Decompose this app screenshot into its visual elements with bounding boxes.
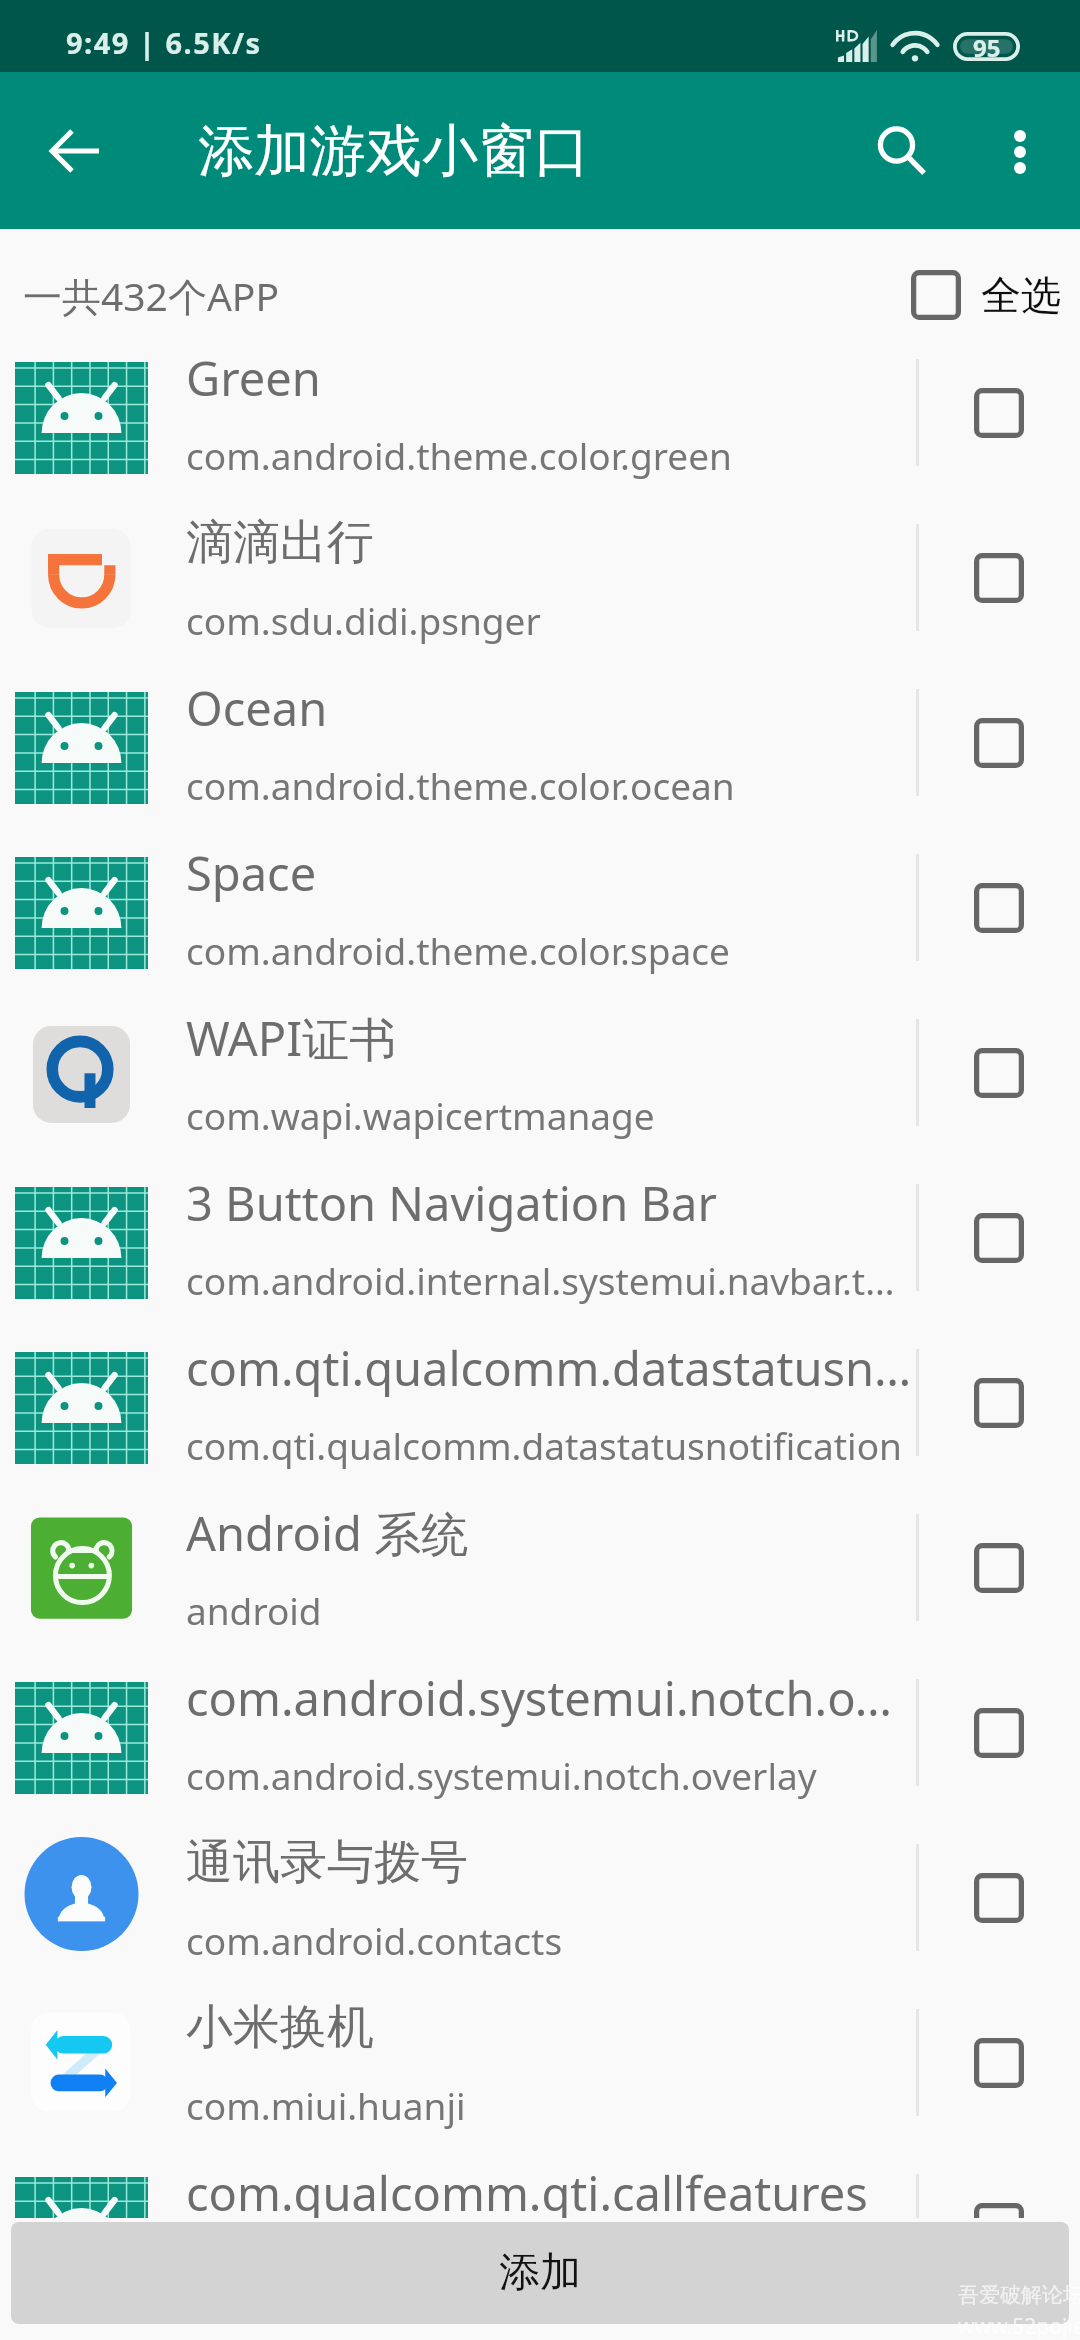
button[interactable]: Android 系统 xyxy=(0,1485,1080,1650)
staticText: 滴滴出行 xyxy=(186,513,912,572)
button[interactable]: Search xyxy=(850,99,954,203)
staticText: com.android.theme.color.green xyxy=(186,430,912,480)
button[interactable]: 添加 xyxy=(11,2222,1069,2324)
staticText: 添加 xyxy=(499,2247,581,2299)
staticText: 3 Button Navigation Bar xyxy=(186,1171,912,1235)
staticText: Space xyxy=(186,841,912,905)
staticText: com.qti.qualcomm.datastatusnotification xyxy=(186,1336,912,1400)
staticText: com.qti.qualcomm.datastatusnotification xyxy=(186,1420,912,1470)
staticText: 一共432个APP xyxy=(23,269,280,322)
staticText: Android 系统 xyxy=(186,1501,912,1565)
button[interactable]: 通讯录与拨号 xyxy=(0,1815,1080,1980)
staticText: com.wapi.wapicertmanage xyxy=(186,1090,912,1140)
staticText: com.android.theme.color.space xyxy=(186,925,912,975)
staticText: WAPI证书 xyxy=(186,1006,912,1070)
staticText: 通讯录与拨号 xyxy=(186,1833,912,1892)
button[interactable]: Ocean xyxy=(0,660,1080,825)
staticText: com.android.theme.color.ocean xyxy=(186,760,912,810)
staticText: Ocean xyxy=(186,676,912,740)
staticText: com.android.contacts xyxy=(186,1915,912,1965)
staticText: 9:49 | 6.5K/s xyxy=(66,23,262,62)
button[interactable]: com.qti.qualcomm.datastatusnotification xyxy=(0,1320,1080,1485)
staticText: com.android.systemui.notch.overlay xyxy=(186,1750,912,1800)
staticText: com.android.internal.systemui.navbar.thr… xyxy=(186,1255,912,1305)
staticText: 全选 xyxy=(981,270,1061,320)
button[interactable]: 小米换机 xyxy=(0,1980,1080,2145)
button[interactable]: More options xyxy=(968,100,1072,204)
staticText: com.qualcomm.qti.callfeatures xyxy=(186,2161,912,2218)
staticText: 吾爱破解论坛 xyxy=(958,2282,1080,2308)
staticText: Green xyxy=(186,346,912,410)
button[interactable]: Green xyxy=(0,330,1080,495)
staticText: com.miui.huanji xyxy=(186,2080,912,2130)
staticText: www.52pojie.cn xyxy=(958,2312,1080,2340)
staticText: android xyxy=(186,1585,912,1635)
staticText: 添加游戏小窗口 xyxy=(198,116,590,187)
button[interactable]: com.qualcomm.qti.callfeatures xyxy=(0,2145,1080,2218)
button[interactable]: WAPI证书 xyxy=(0,990,1080,1155)
button[interactable]: Back xyxy=(22,99,126,203)
button[interactable]: Space xyxy=(0,825,1080,990)
button[interactable]: com.android.systemui.notch.overlay xyxy=(0,1650,1080,1815)
button[interactable]: 滴滴出行 xyxy=(0,495,1080,660)
button[interactable]: 全选 xyxy=(911,270,1061,320)
staticText: 小米换机 xyxy=(186,1998,912,2057)
staticText: com.sdu.didi.psnger xyxy=(186,595,912,645)
button[interactable]: 3 Button Navigation Bar xyxy=(0,1155,1080,1320)
staticText: com.android.systemui.notch.overlay xyxy=(186,1666,912,1730)
staticText: 95 xyxy=(973,31,1001,60)
